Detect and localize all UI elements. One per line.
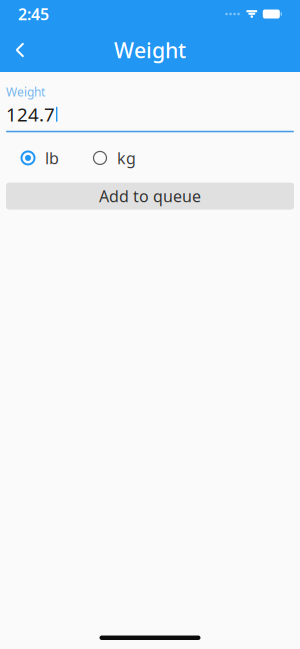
button[interactable]: Back	[0, 28, 40, 72]
button[interactable]: Add to queue	[6, 183, 294, 210]
staticText: Weight	[6, 84, 45, 100]
staticText: 2:45	[18, 3, 49, 25]
staticText: 124.7	[6, 102, 55, 127]
button[interactable]: kg	[91, 143, 136, 172]
button[interactable]: lb	[19, 143, 59, 172]
staticText: Add to queue	[99, 185, 201, 207]
staticText: kg	[117, 147, 136, 168]
staticText: lb	[45, 147, 59, 168]
staticText: Weight	[114, 36, 186, 64]
